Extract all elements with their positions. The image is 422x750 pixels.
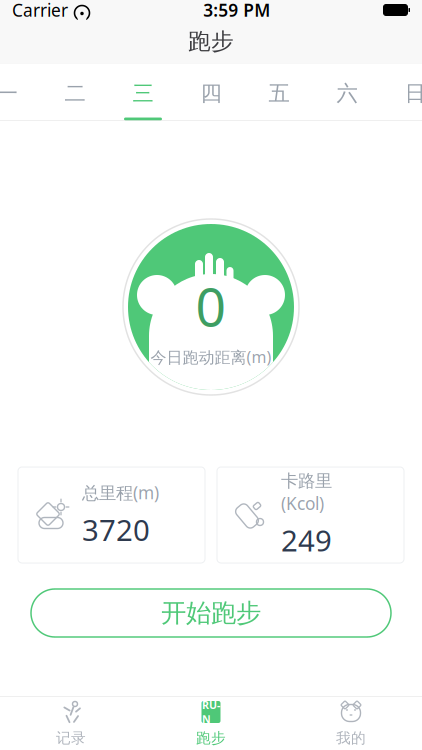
button[interactable]: 三 [113,63,173,120]
staticText: 四 [200,80,221,106]
staticText: 跑步 [188,28,234,55]
button[interactable]: 总里程(m) [18,467,205,563]
staticText: 五 [268,80,289,106]
button[interactable]: 卡路里(Kcol) [217,467,404,563]
staticText: 一 [0,80,17,106]
staticText: 今日跑动距离(m) [150,346,271,367]
button[interactable]: 四 [181,63,241,120]
staticText: 跑步 [196,729,226,747]
staticText: 249 [281,521,332,560]
staticText: 开始跑步 [161,597,261,628]
button[interactable]: RUN [141,697,281,750]
staticText: Carrier [12,0,68,21]
button[interactable]: 日 [385,63,422,120]
staticText: 卡路里(Kcol) [281,470,332,515]
staticText: 记录 [56,729,86,747]
button[interactable]: 我的 [281,697,421,750]
staticText: RUN [202,698,220,726]
staticText: 0 [195,270,226,341]
button[interactable]: 五 [249,63,309,120]
staticText: 日 [404,80,422,106]
button[interactable]: 开始跑步 [31,589,391,637]
staticText: 二 [64,80,85,106]
staticText: 3720 [82,510,150,549]
staticText: 三 [132,80,153,106]
staticText: 总里程(m) [82,481,159,504]
button[interactable]: 六 [317,63,377,120]
button[interactable]: 一 [0,63,37,120]
staticText: 我的 [336,729,366,747]
button[interactable]: 记录 [1,697,141,750]
button[interactable]: 二 [45,63,105,120]
staticText: 六 [336,80,357,106]
staticText: 3:59 PM [203,0,270,21]
